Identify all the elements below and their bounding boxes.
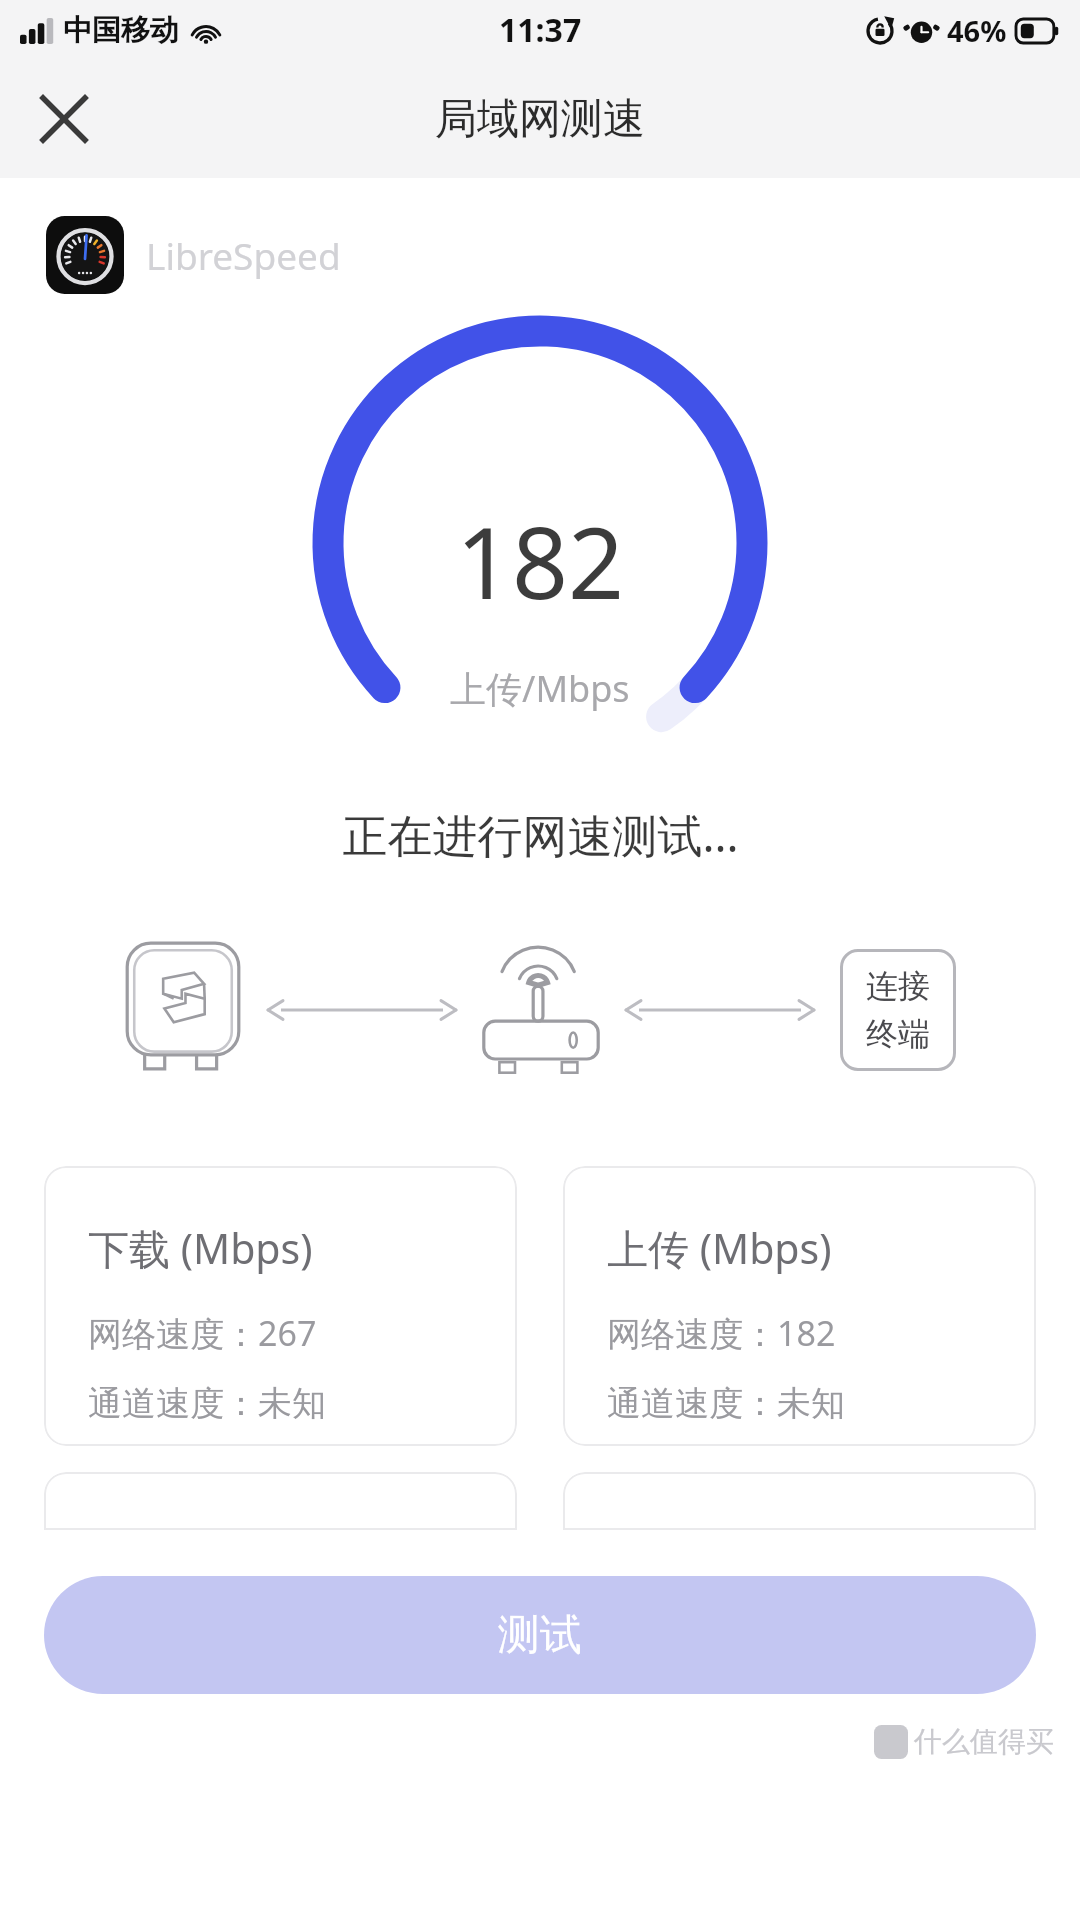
staticText: 下载 (Mbps)	[88, 1220, 313, 1276]
staticText: 正在进行网速测试...	[342, 804, 739, 865]
staticText: LibreSpeed	[146, 230, 341, 280]
staticText: 连接	[866, 966, 930, 1006]
staticText: 网络速度：267	[88, 1310, 317, 1356]
staticText: 通道速度：未知	[88, 1382, 326, 1425]
button[interactable]	[563, 1472, 1036, 1530]
button[interactable]: 测试	[44, 1576, 1036, 1694]
staticText: 11:37	[499, 8, 582, 52]
staticText: 通道速度：未知	[607, 1382, 845, 1425]
staticText: 局域网测速	[435, 93, 645, 146]
staticText: 测试	[498, 1609, 582, 1662]
button[interactable]: Close	[22, 77, 106, 161]
staticText: 上传 (Mbps)	[607, 1220, 832, 1276]
button[interactable]: 下载 (Mbps)	[44, 1166, 517, 1446]
button[interactable]	[44, 1472, 517, 1530]
button[interactable]: 上传 (Mbps)	[563, 1166, 1036, 1446]
staticText: 什么值得买	[914, 1724, 1054, 1759]
staticText: 中国移动	[63, 12, 179, 49]
staticText: 182	[456, 494, 625, 627]
staticText: 网络速度：182	[607, 1310, 836, 1356]
staticText: 上传/Mbps	[450, 664, 630, 713]
staticText: 终端	[866, 1014, 930, 1054]
staticText: 46%	[947, 11, 1007, 50]
